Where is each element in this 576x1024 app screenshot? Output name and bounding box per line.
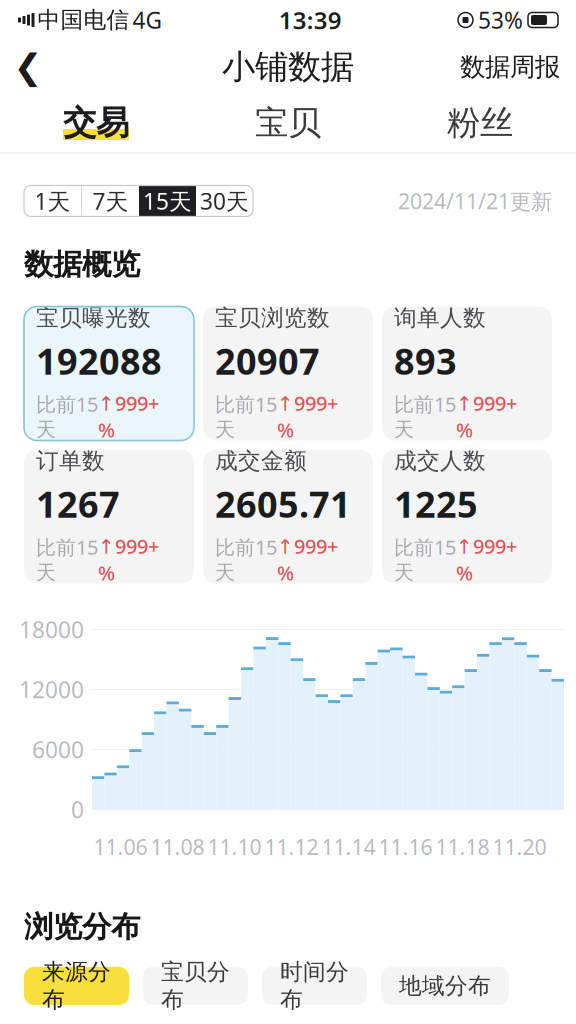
staticText: 11.08 [150, 832, 204, 861]
staticText: 询单人数 [394, 304, 486, 332]
staticText: ↑999+% [98, 390, 159, 443]
staticText: 1267 [36, 480, 120, 528]
button[interactable]: 宝贝分布 [143, 967, 248, 1005]
staticText: 11.10 [207, 832, 261, 861]
staticText: 30天 [200, 186, 249, 216]
button[interactable]: 7天 [82, 185, 139, 216]
button[interactable]: 1天 [24, 185, 81, 216]
staticText: 比前15天 [36, 534, 98, 585]
staticText: 比前15天 [36, 391, 98, 442]
button[interactable]: 来源分布 [24, 967, 129, 1005]
staticText: ↑999+% [277, 390, 338, 443]
staticText: 192088 [36, 337, 162, 385]
staticText: 中国电信 [37, 6, 129, 34]
staticText: 交易 [63, 102, 129, 143]
staticText: 11.18 [435, 832, 489, 861]
staticText: 比前15天 [215, 391, 277, 442]
staticText: 比前15天 [394, 391, 456, 442]
staticText: 宝贝曝光数 [36, 304, 151, 332]
staticText: 浏览分布 [24, 909, 140, 945]
button[interactable]: 询单人数 [382, 306, 552, 440]
button[interactable]: 宝贝曝光数 [24, 306, 194, 440]
staticText: 宝贝 [255, 102, 321, 143]
button[interactable]: 订单数 [24, 449, 194, 583]
button[interactable]: 30天 [196, 185, 253, 216]
staticText: 18000 [19, 614, 84, 645]
staticText: ↑999+% [98, 533, 159, 586]
button[interactable]: 宝贝浏览数 [203, 306, 373, 440]
staticText: 6000 [32, 734, 84, 765]
button[interactable]: 成交金额 [203, 449, 373, 583]
staticText: 11.14 [321, 832, 375, 861]
staticText: 15天 [143, 186, 192, 216]
staticText: 12000 [19, 674, 84, 705]
button[interactable]: 成交人数 [382, 449, 552, 583]
button[interactable]: 地域分布 [381, 967, 509, 1005]
staticText: 地域分布 [399, 972, 491, 1000]
button[interactable]: 粉丝 [384, 94, 576, 152]
button[interactable]: 数据周报 [444, 40, 576, 94]
staticText: 4G [132, 5, 162, 35]
staticText: 小铺数据 [222, 46, 354, 87]
staticText: 7天 [92, 186, 128, 216]
staticText: 893 [394, 337, 457, 385]
button[interactable]: 时间分布 [262, 967, 367, 1005]
staticText: 11.06 [93, 832, 147, 861]
staticText: 1天 [34, 186, 70, 216]
staticText: 成交金额 [215, 447, 307, 475]
staticText: 11.16 [378, 832, 432, 861]
staticText: 来源分布 [42, 958, 111, 1014]
staticText: ↑999+% [456, 533, 517, 586]
staticText: 数据周报 [460, 51, 560, 82]
staticText: 时间分布 [280, 958, 349, 1014]
staticText: 0 [71, 794, 84, 825]
staticText: 订单数 [36, 447, 105, 475]
staticText: 20907 [215, 337, 320, 385]
staticText: 宝贝分布 [161, 958, 230, 1014]
staticText: ❮ [13, 47, 42, 87]
staticText: 2024/11/21更新 [398, 187, 552, 215]
button[interactable]: 交易 [0, 94, 192, 152]
button[interactable]: 15天 [139, 185, 196, 216]
staticText: 2605.71 [215, 480, 351, 528]
staticText: 比前15天 [394, 534, 456, 585]
staticText: 11.20 [492, 832, 546, 861]
staticText: 13:39 [279, 4, 342, 36]
button[interactable]: Back [0, 40, 56, 94]
staticText: 宝贝浏览数 [215, 304, 330, 332]
staticText: 数据概览 [24, 246, 140, 282]
staticText: ↑999+% [456, 390, 517, 443]
staticText: 粉丝 [447, 102, 513, 143]
staticText: 53% [478, 5, 523, 35]
staticText: ↑999+% [277, 533, 338, 586]
staticText: 11.12 [264, 832, 318, 861]
staticText: 成交人数 [394, 447, 486, 475]
staticText: 1225 [394, 480, 478, 528]
staticText: 比前15天 [215, 534, 277, 585]
button[interactable]: 宝贝 [192, 94, 384, 152]
